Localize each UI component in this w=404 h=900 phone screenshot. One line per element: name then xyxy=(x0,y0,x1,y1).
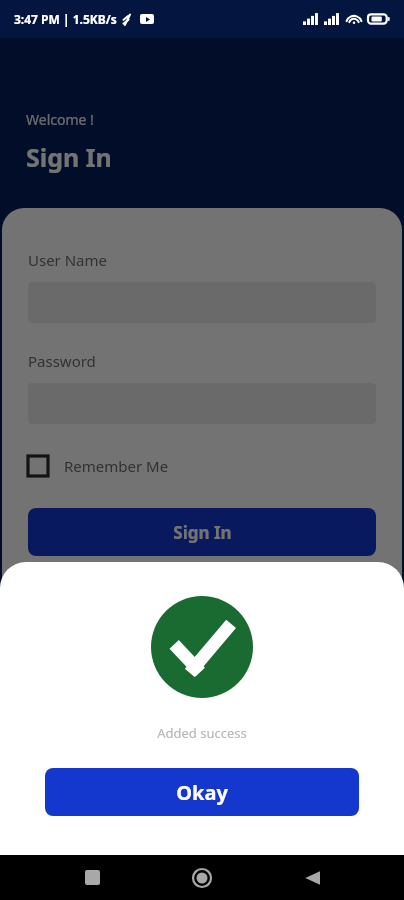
staticText: User Name xyxy=(28,250,108,270)
button[interactable]: Sign In xyxy=(28,508,376,556)
button[interactable]: Remember Me xyxy=(28,454,169,478)
staticText: Password xyxy=(28,351,96,371)
staticText: 3:47 PM | 1.5KB/s xyxy=(14,11,117,27)
staticText: Sign In xyxy=(26,140,112,174)
staticText: Welcome ! xyxy=(26,110,94,129)
staticText: Added success xyxy=(157,724,247,742)
staticText: Sign In xyxy=(173,521,232,544)
staticText: Remember Me xyxy=(64,456,169,476)
button[interactable]: Recents xyxy=(37,855,147,900)
button[interactable]: Okay xyxy=(45,768,359,816)
staticText: Okay xyxy=(176,779,228,806)
button[interactable]: Back xyxy=(257,855,367,900)
button[interactable]: Home xyxy=(147,855,257,900)
